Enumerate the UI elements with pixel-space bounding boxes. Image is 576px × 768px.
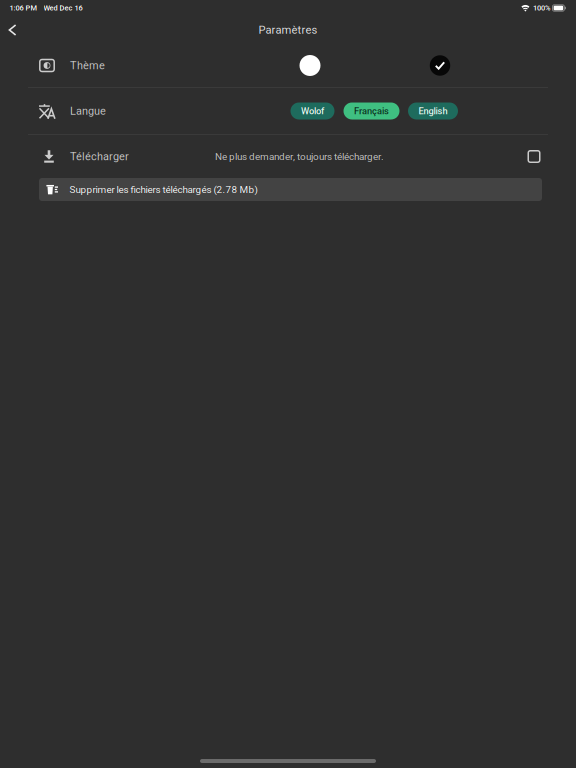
button[interactable]: English bbox=[408, 102, 458, 119]
staticText: Français bbox=[354, 105, 389, 116]
button[interactable]: Français bbox=[343, 102, 399, 119]
button[interactable]: Supprimer les fichiers téléchargés (2.78… bbox=[39, 178, 542, 201]
staticText: Télécharger bbox=[70, 150, 129, 163]
staticText: Paramètres bbox=[258, 23, 317, 36]
staticText: Wed Dec 16 bbox=[43, 4, 82, 12]
staticText: 1:06 PM bbox=[9, 4, 37, 12]
button[interactable]: Always download bbox=[522, 144, 546, 168]
button[interactable]: Light theme bbox=[295, 50, 325, 80]
staticText: Supprimer les fichiers téléchargés (2.78… bbox=[69, 184, 257, 195]
staticText: Thème bbox=[70, 59, 105, 72]
button[interactable]: Wolof bbox=[290, 102, 334, 119]
staticText: Langue bbox=[70, 105, 106, 117]
staticText: English bbox=[418, 105, 447, 116]
button[interactable]: Back bbox=[0, 17, 25, 43]
staticText: Ne plus demander, toujours télécharger. bbox=[215, 151, 384, 162]
button[interactable]: Dark theme bbox=[425, 50, 455, 80]
staticText: Wolof bbox=[301, 105, 324, 116]
staticText: 100% bbox=[533, 4, 550, 12]
